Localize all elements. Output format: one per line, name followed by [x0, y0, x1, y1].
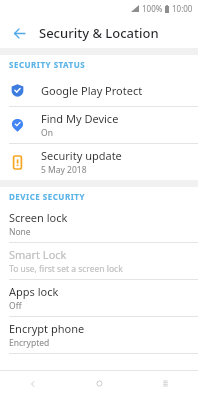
staticText: Encrypt phone	[9, 321, 85, 336]
button[interactable]: Security update	[0, 144, 198, 180]
staticText: On	[41, 127, 53, 139]
staticText: SECURITY STATUS	[9, 59, 86, 70]
staticText: Security & Location	[39, 24, 159, 42]
staticText: None	[9, 226, 31, 238]
staticText: Google Play Protect	[41, 83, 143, 98]
staticText: Off	[9, 300, 22, 312]
staticText: Apps lock	[9, 284, 59, 299]
staticText: Encrypted	[9, 337, 50, 349]
staticText: DEVICE SECURITY	[9, 191, 85, 202]
button[interactable]: Google Play Protect	[0, 74, 198, 106]
staticText: Find My Device	[41, 111, 119, 126]
staticText: 10:00	[172, 3, 193, 14]
button[interactable]: Home	[66, 371, 132, 396]
button[interactable]: Recent apps	[132, 371, 198, 396]
button[interactable]: Apps lock	[0, 280, 198, 316]
button[interactable]: Back	[7, 21, 31, 45]
button[interactable]: Screen lock	[0, 206, 198, 242]
staticText: Screen lock	[9, 210, 68, 225]
button[interactable]: Encrypt phone	[0, 317, 198, 353]
button[interactable]: Find My Device	[0, 107, 198, 143]
staticText: 5 May 2018	[41, 164, 87, 176]
staticText: To use, first set a screen lock	[9, 263, 123, 275]
button[interactable]: Smart Lock	[0, 243, 198, 279]
staticText: 100%	[142, 3, 163, 14]
staticText: Smart Lock	[9, 247, 67, 262]
staticText: Security update	[41, 148, 122, 163]
